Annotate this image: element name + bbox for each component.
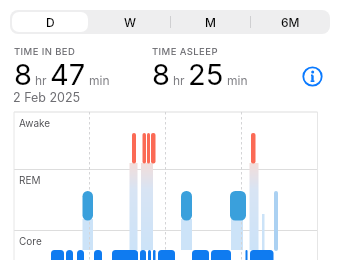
staticText: 8 [152,57,170,92]
staticText: 47 [50,57,86,92]
staticText: Core [19,235,42,247]
button[interactable]: D [10,10,90,34]
staticText: W [124,15,137,30]
staticText: TIME IN BED [14,46,76,57]
staticText: REM [19,174,41,186]
staticText: D [46,15,55,30]
staticText: 25 [188,57,224,92]
button[interactable] [302,66,323,87]
staticText: 2 Feb 2025 [13,90,81,105]
staticText: Awake [19,117,51,129]
button[interactable]: W [90,10,170,34]
staticText: min [227,73,248,88]
button[interactable]: 6M [250,10,330,34]
staticText: M [205,15,216,30]
staticText: hr [173,73,185,88]
staticText: hr [35,73,47,88]
staticText: TIME ASLEEP [152,46,218,57]
staticText: min [89,73,110,88]
staticText: 6M [281,15,300,30]
staticText: 8 [14,57,32,92]
button[interactable]: M [170,10,250,34]
